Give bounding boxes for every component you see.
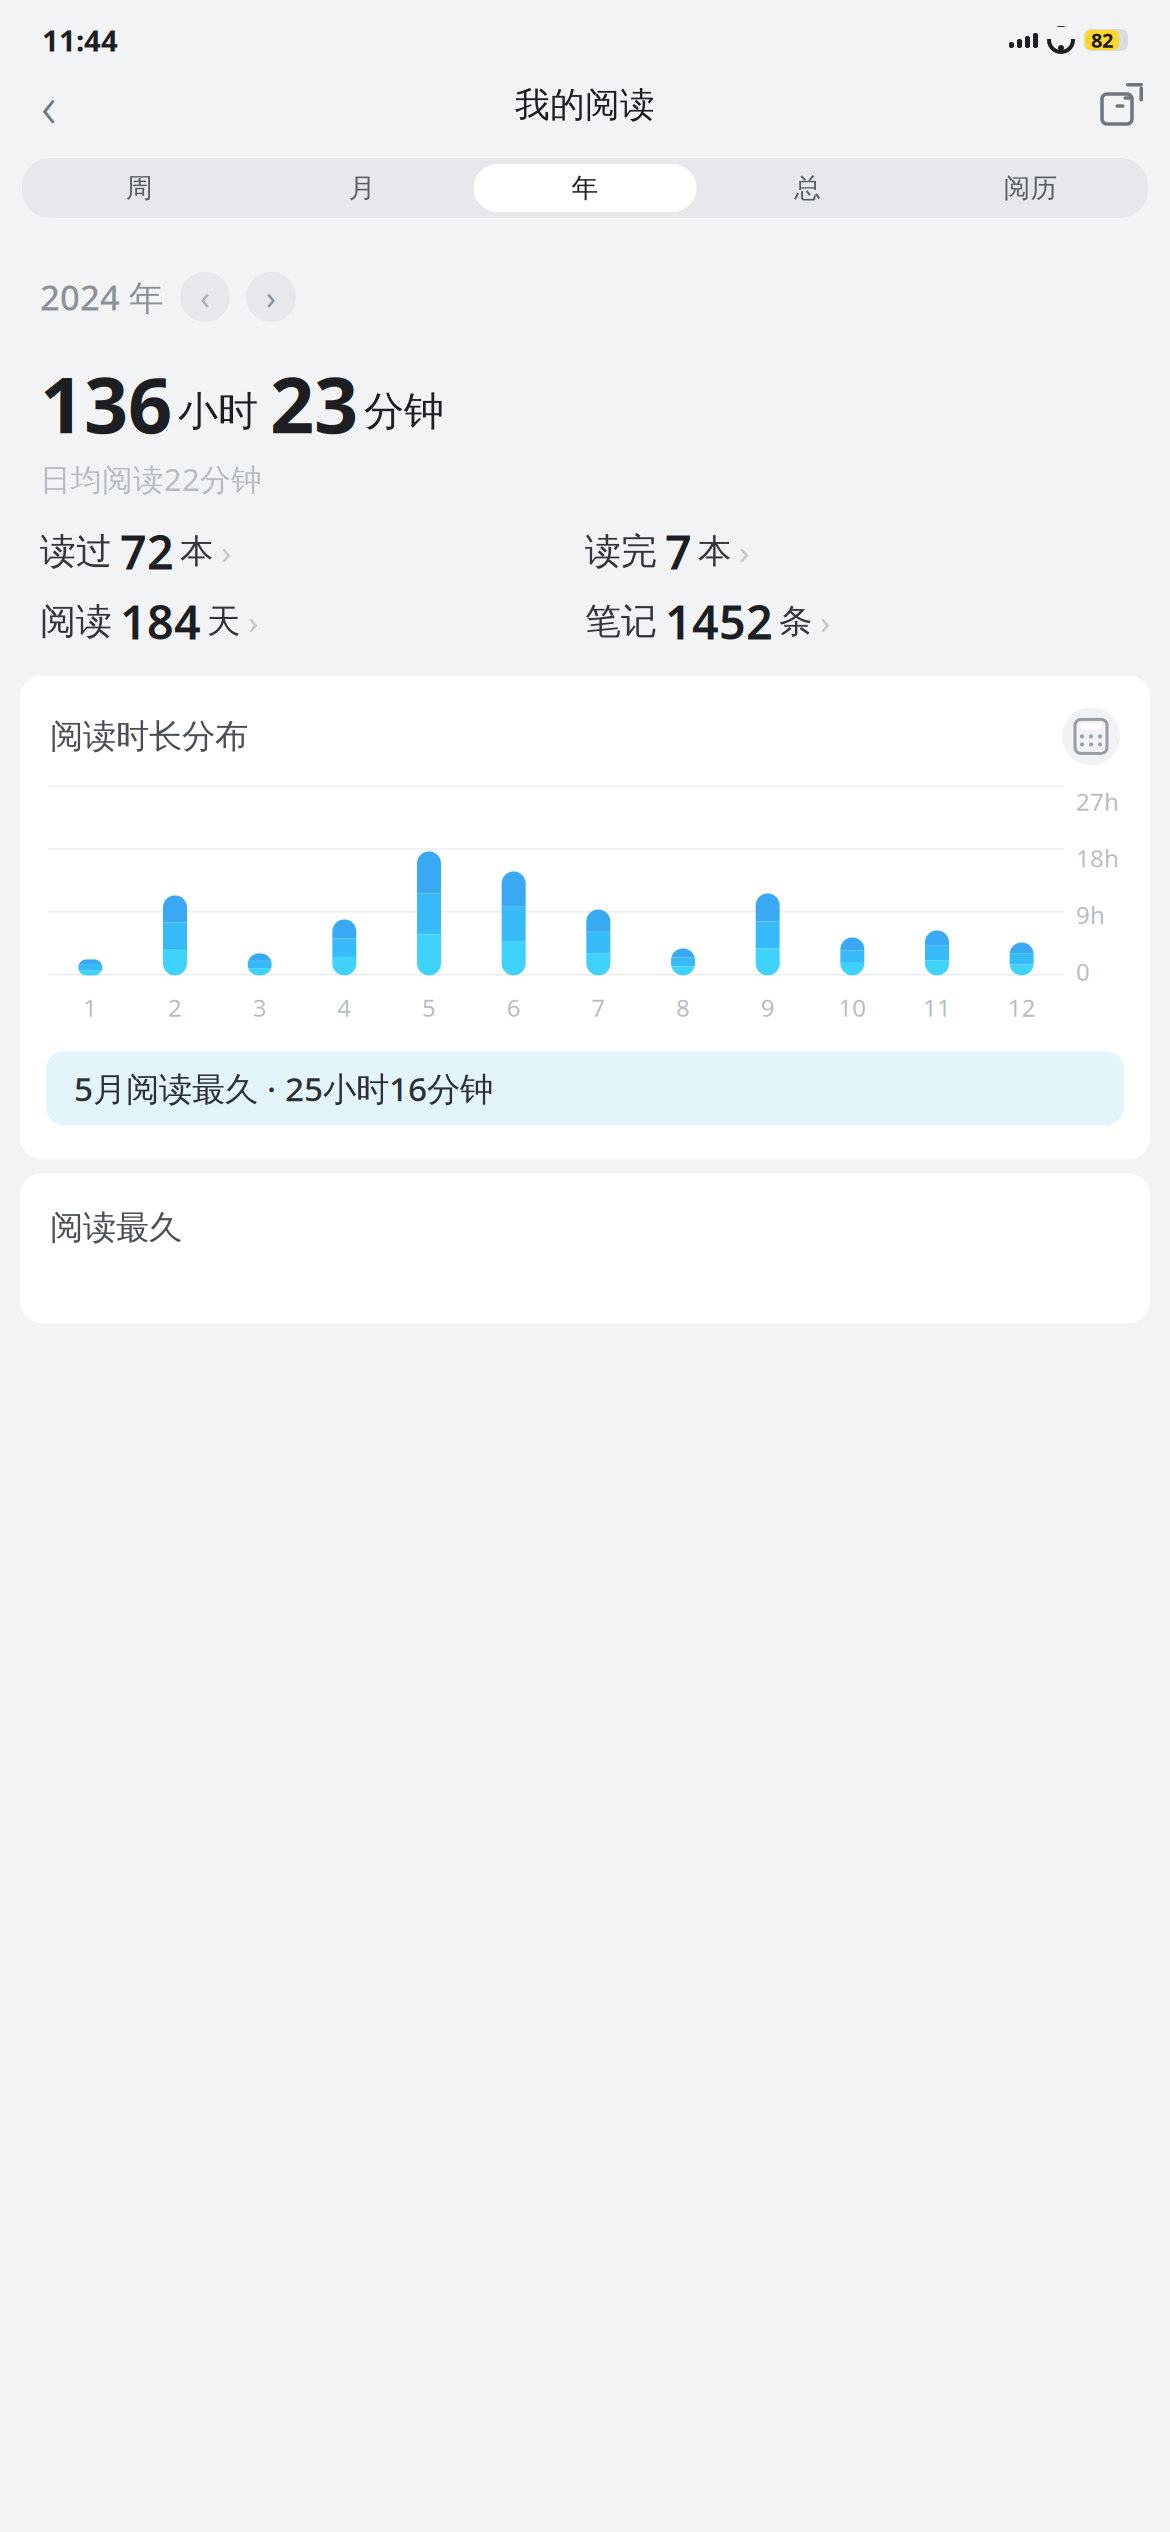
staticText: 12 (1008, 991, 1036, 1023)
staticText: ‹ (200, 276, 210, 318)
staticText: 读完 (585, 529, 657, 573)
staticText: 9 (761, 991, 775, 1023)
staticText: 日均阅读22分钟 (40, 459, 262, 499)
staticText: 2024 年 (40, 274, 164, 320)
staticText: › (266, 276, 276, 318)
button[interactable]: 上一年 (180, 272, 230, 322)
button[interactable]: 总 (696, 164, 919, 212)
staticText: 136 (40, 352, 172, 455)
staticText: 11 (923, 991, 951, 1023)
staticText: 18h (1076, 842, 1119, 874)
staticText: 条 (779, 601, 812, 642)
staticText: 阅历 (1004, 172, 1058, 204)
button[interactable]: 下一年 (246, 272, 296, 322)
staticText: 82 (1091, 27, 1113, 53)
staticText: 读过 (40, 529, 112, 573)
staticText: 9h (1076, 899, 1105, 931)
staticText: 2 (168, 991, 182, 1023)
staticText: › (248, 599, 258, 644)
staticText: 小时 (178, 387, 258, 436)
staticText: 11:44 (42, 20, 118, 59)
button[interactable]: 年 (474, 164, 696, 212)
staticText: 笔记 (585, 599, 657, 643)
staticText: 我的阅读 (515, 84, 655, 126)
button[interactable]: 阅读 (40, 593, 585, 649)
button[interactable]: 月 (251, 164, 474, 212)
staticText: 8 (676, 991, 690, 1023)
staticText: 本 (698, 531, 731, 572)
staticText: 阅读时长分布 (50, 716, 248, 757)
staticText: 4 (337, 991, 351, 1023)
staticText: 3 (253, 991, 267, 1023)
button[interactable]: 阅历 (919, 164, 1142, 212)
staticText: 1452 (665, 590, 773, 652)
staticText: › (739, 529, 749, 574)
staticText: › (221, 529, 231, 574)
staticText: 184 (120, 590, 201, 652)
button[interactable]: 读完 (585, 523, 1130, 579)
staticText: 月 (349, 172, 376, 204)
staticText: 周 (126, 172, 153, 204)
staticText: 0 (1076, 955, 1090, 987)
staticText: 天 (207, 601, 240, 642)
button[interactable]: 读过 (40, 523, 585, 579)
staticText: 分钟 (364, 387, 444, 436)
button[interactable]: 返回 (18, 74, 80, 136)
staticText: 5 (422, 991, 436, 1023)
staticText: 本 (180, 531, 213, 572)
staticText: 年 (571, 172, 598, 204)
staticText: 7 (591, 991, 605, 1023)
staticText: 阅读最久 (50, 1207, 182, 1248)
staticText: 7 (665, 520, 692, 582)
staticText: 5月阅读最久 · 25小时16分钟 (74, 1066, 493, 1110)
staticText: 23 (270, 352, 358, 455)
staticText: 27h (1076, 785, 1119, 817)
staticText: 72 (120, 520, 174, 582)
button[interactable]: 选择日期 (1062, 707, 1120, 765)
staticText: 阅读 (40, 599, 112, 643)
staticText: 10 (838, 991, 866, 1023)
staticText: ‹ (41, 66, 57, 144)
button[interactable]: 分享 (1090, 74, 1152, 136)
staticText: 6 (507, 991, 521, 1023)
staticText: 总 (794, 172, 821, 204)
staticText: › (820, 599, 830, 644)
button[interactable]: 周 (28, 164, 251, 212)
staticText: 1 (83, 991, 97, 1023)
button[interactable]: 笔记 (585, 593, 1130, 649)
